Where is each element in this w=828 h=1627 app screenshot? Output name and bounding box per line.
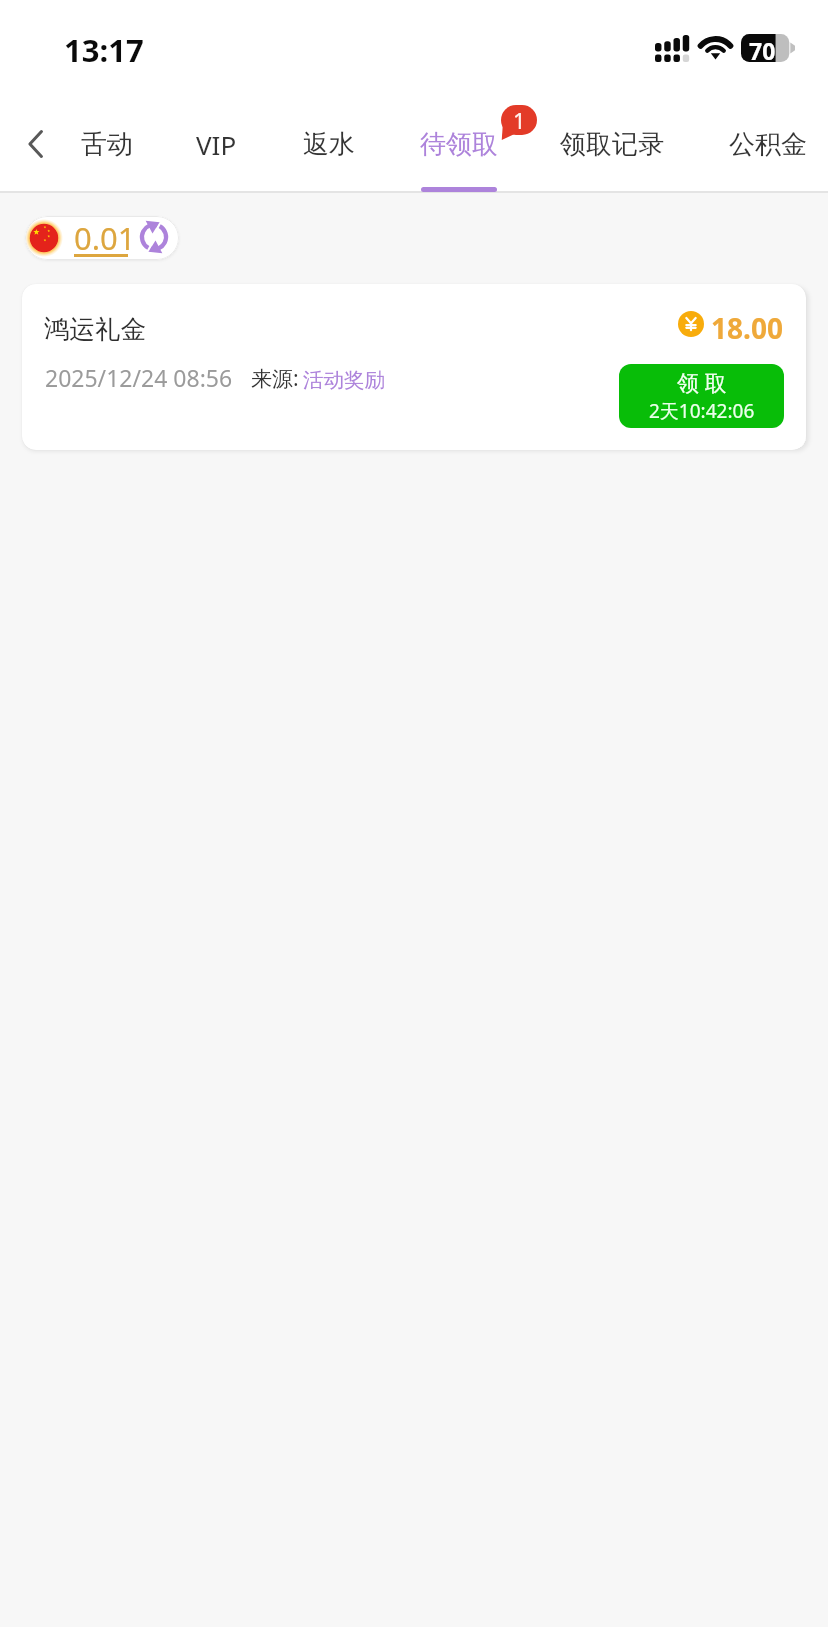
staticText: 领取记录 (560, 128, 664, 161)
staticText: 13:17 (64, 29, 144, 71)
button[interactable]: 舌动 (63, 96, 151, 192)
staticText: 待领取 (420, 128, 498, 161)
button[interactable]: Refresh balance (137, 218, 171, 256)
button[interactable]: VIP (157, 96, 275, 192)
staticText: 活动奖励 (303, 367, 385, 393)
staticText: VIP (196, 127, 237, 162)
staticText: 领 取 (677, 367, 727, 397)
button[interactable]: 待领取 (400, 96, 518, 192)
staticText: 返水 (303, 128, 355, 161)
staticText: 舌动 (81, 128, 133, 161)
staticText: 2025/12/24 08:56 (45, 362, 233, 393)
staticText: 1 (513, 105, 526, 135)
staticText: 70 (749, 35, 776, 63)
staticText: 0.01 (74, 217, 136, 259)
button[interactable]: 领取记录 (538, 96, 686, 192)
staticText: 2天10:42:06 (649, 398, 755, 424)
staticText: 18.00 (711, 309, 783, 347)
staticText: 来源: (251, 364, 299, 393)
button[interactable]: 0.01 (25, 216, 179, 260)
button[interactable]: 公积金 (709, 96, 827, 192)
staticText: 公积金 (729, 128, 807, 161)
button[interactable]: 鸿运礼金 (22, 284, 806, 450)
button[interactable]: Back (8, 116, 64, 172)
button[interactable]: 领 取 (619, 364, 784, 428)
staticText: 鸿运礼金 (44, 313, 146, 345)
button[interactable]: 返水 (285, 96, 373, 192)
